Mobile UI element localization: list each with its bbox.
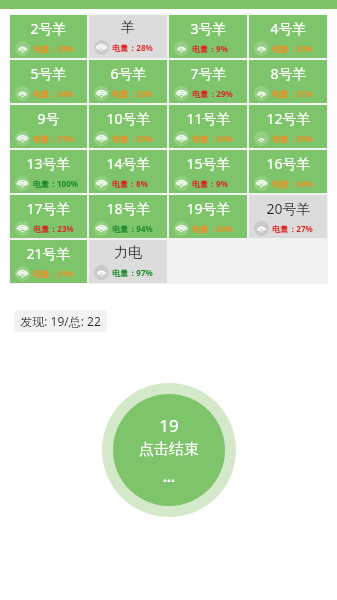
staticText: 8号羊 (270, 64, 307, 83)
staticText: 13号羊 (26, 154, 71, 173)
button[interactable]: 12号羊 (249, 105, 327, 148)
staticText: 点击结束 (139, 440, 199, 459)
staticText: 电量：34% (272, 178, 313, 189)
staticText: 电量：34% (192, 133, 233, 144)
staticText: 电量：33% (33, 43, 74, 54)
button[interactable]: 2号羊 (10, 15, 87, 58)
staticText: 11号羊 (186, 109, 231, 128)
staticText: 电量：9% (192, 178, 228, 189)
button[interactable]: 3号羊 (169, 15, 247, 58)
staticText: 电量：30% (192, 223, 233, 234)
staticText: 电量：30% (112, 133, 153, 144)
staticText: 7号羊 (190, 64, 227, 83)
button[interactable]: 16号羊 (249, 150, 327, 193)
staticText: 20号羊 (266, 199, 311, 218)
button[interactable]: 14号羊 (89, 150, 167, 193)
staticText: 2号羊 (30, 19, 67, 38)
staticText: 电量：33% (272, 43, 313, 54)
staticText: 发现: 19/总: 22 (20, 313, 101, 329)
staticText: 9号 (37, 109, 60, 128)
staticText: 电量：23% (33, 223, 74, 234)
staticText: 电量：97% (112, 267, 153, 278)
button[interactable]: 5号羊 (10, 60, 87, 103)
staticText: 电量：100% (33, 178, 78, 189)
staticText: 10号羊 (106, 109, 151, 128)
staticText: 19号羊 (186, 199, 231, 218)
staticText: 电量：31% (33, 133, 74, 144)
button[interactable]: 点击结束 (101, 382, 237, 518)
staticText: 电量：29% (192, 88, 233, 99)
button[interactable]: 10号羊 (89, 105, 167, 148)
staticText: ... (163, 467, 175, 486)
staticText: 15号羊 (186, 154, 231, 173)
staticText: 6号羊 (110, 64, 147, 83)
staticText: 21号羊 (26, 244, 71, 263)
staticText: 电量：35% (272, 133, 313, 144)
staticText: 4号羊 (270, 19, 307, 38)
staticText: 羊 (121, 19, 135, 37)
staticText: 16号羊 (266, 154, 311, 173)
staticText: 3号羊 (190, 19, 227, 38)
button[interactable]: 20号羊 (249, 195, 327, 238)
staticText: 电量：33% (112, 88, 153, 99)
staticText: 19 (159, 414, 179, 437)
button[interactable]: 11号羊 (169, 105, 247, 148)
button[interactable]: 4号羊 (249, 15, 327, 58)
button[interactable]: 8号羊 (249, 60, 327, 103)
staticText: 电量：27% (272, 223, 313, 234)
staticText: 17号羊 (26, 199, 71, 218)
button[interactable]: 6号羊 (89, 60, 167, 103)
staticText: 电量：31% (272, 88, 313, 99)
staticText: 12号羊 (266, 109, 311, 128)
staticText: 电量：34% (33, 88, 74, 99)
button[interactable]: 13号羊 (10, 150, 87, 193)
button[interactable]: 19号羊 (169, 195, 247, 238)
button[interactable]: 17号羊 (10, 195, 87, 238)
staticText: 力电 (114, 244, 142, 262)
button[interactable]: 15号羊 (169, 150, 247, 193)
button[interactable]: 18号羊 (89, 195, 167, 238)
staticText: 14号羊 (106, 154, 151, 173)
button[interactable]: 力电 (89, 240, 167, 283)
staticText: 5号羊 (30, 64, 67, 83)
button[interactable]: 21号羊 (10, 240, 87, 283)
button[interactable]: 发现: 19/总: 22 (14, 310, 107, 332)
staticText: 电量：31% (33, 268, 74, 279)
button[interactable]: 7号羊 (169, 60, 247, 103)
staticText: 电量：9% (192, 43, 228, 54)
staticText: 18号羊 (106, 199, 151, 218)
staticText: 电量：8% (112, 178, 148, 189)
button[interactable]: 羊 (89, 15, 167, 58)
staticText: 电量：94% (112, 223, 153, 234)
button[interactable]: 9号 (10, 105, 87, 148)
staticText: 电量：28% (112, 42, 153, 53)
